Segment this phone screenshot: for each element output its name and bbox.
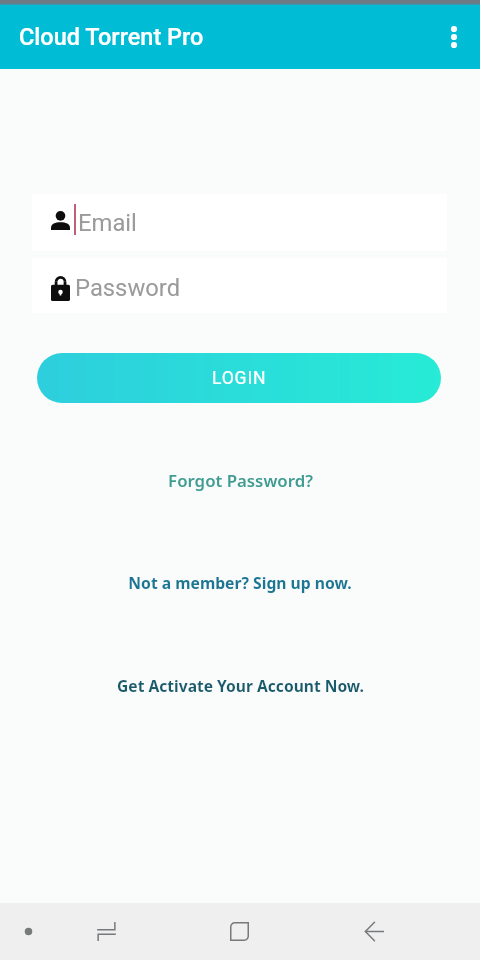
button[interactable]: Back — [340, 903, 408, 960]
button[interactable]: Not a member? Sign up now. — [122, 566, 358, 598]
staticText: Cloud Torrent Pro — [19, 23, 204, 51]
button[interactable]: More options — [432, 15, 476, 59]
button[interactable]: Recent apps — [72, 903, 140, 960]
button[interactable]: Password input — [32, 258, 447, 313]
staticText: Get Activate Your Account Now. — [117, 675, 364, 696]
button[interactable]: Email input — [32, 194, 447, 251]
staticText: Forgot Password? — [168, 469, 313, 492]
button[interactable]: LOGIN — [37, 353, 441, 403]
button[interactable]: Hide keyboard — [0, 903, 57, 960]
staticText: Password — [75, 274, 181, 302]
button[interactable]: Home — [206, 903, 272, 960]
staticText: LOGIN — [212, 368, 267, 389]
staticText: Email — [78, 209, 137, 237]
button[interactable]: Get Activate Your Account Now. — [111, 669, 370, 701]
staticText: Not a member? Sign up now. — [128, 572, 352, 593]
button[interactable]: Forgot Password? — [162, 464, 319, 496]
